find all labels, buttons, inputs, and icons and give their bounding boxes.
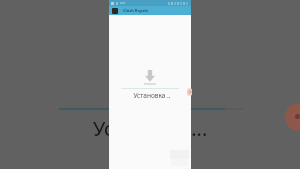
button[interactable]: Установка... (93, 113, 208, 139)
staticText: Установка... (93, 115, 208, 141)
button[interactable]: Seek bar (59, 104, 243, 114)
staticText: Установка .. (111, 91, 193, 100)
button[interactable]: Channel avatar (285, 103, 300, 131)
staticText: Clash Royale (123, 8, 149, 13)
button[interactable]: Clash Royale (109, 6, 191, 15)
